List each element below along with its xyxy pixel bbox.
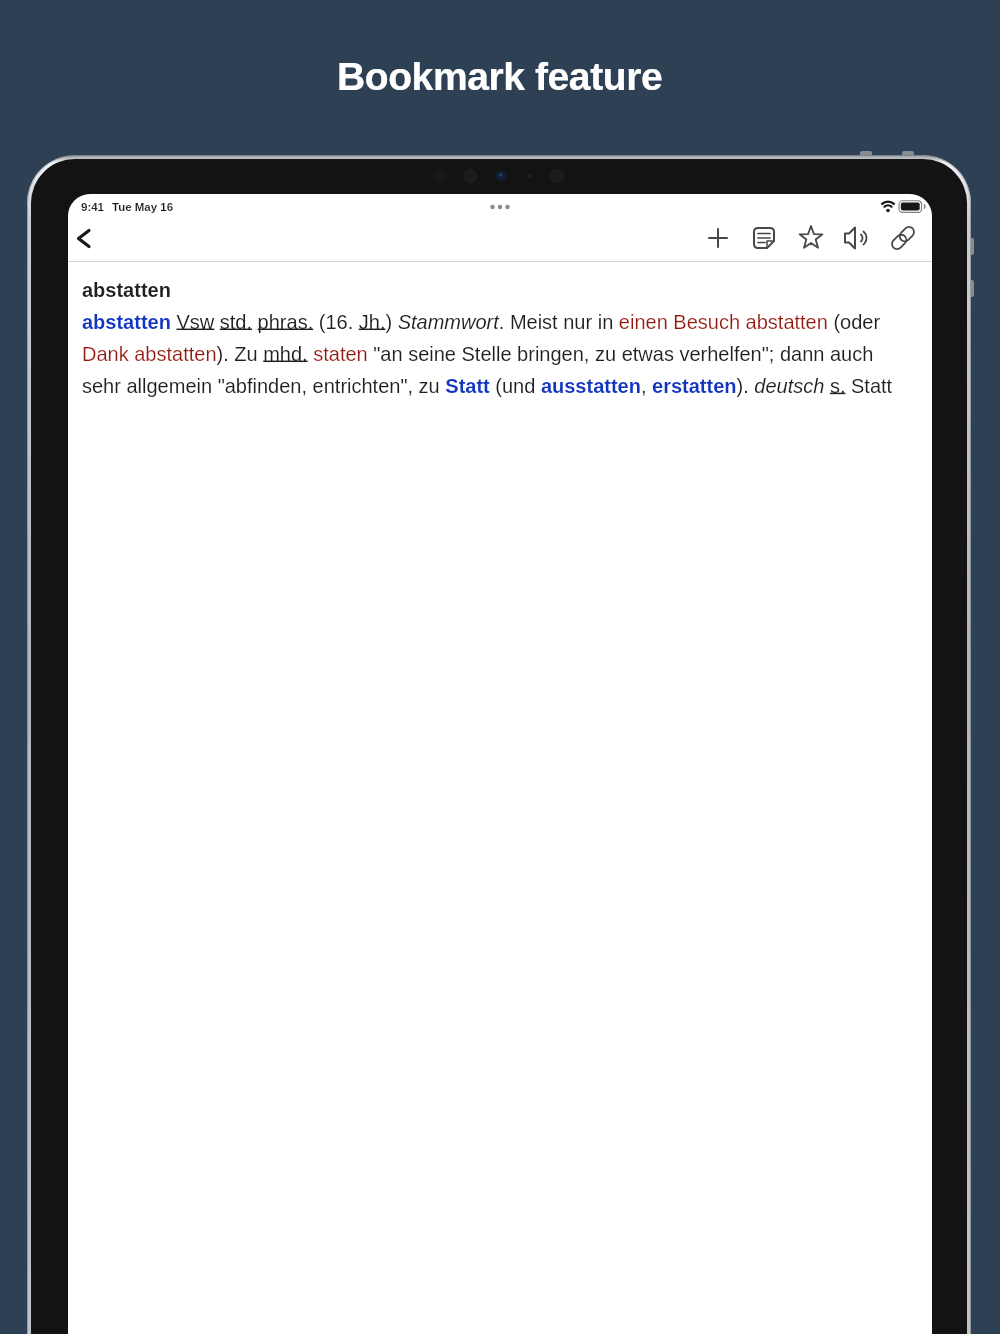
staticText: Tue May 16 (112, 201, 174, 214)
staticText: 9:41 (81, 201, 105, 214)
button[interactable] (881, 216, 925, 260)
button[interactable] (72, 216, 112, 260)
button[interactable] (835, 216, 879, 260)
staticText: Bookmark feature (337, 55, 663, 99)
button[interactable] (742, 216, 786, 260)
button[interactable] (696, 216, 740, 260)
button[interactable] (789, 216, 833, 260)
staticText: abstatten abstatten Vsw std. phras. (16.… (82, 279, 928, 397)
